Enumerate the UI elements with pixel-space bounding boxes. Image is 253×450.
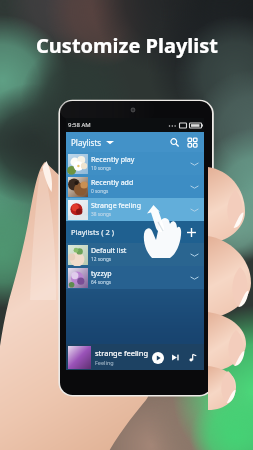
staticText: 38 songs [91, 211, 112, 218]
button[interactable]: Add playlist [185, 226, 198, 239]
button[interactable]: Next track [168, 350, 183, 365]
button[interactable]: strange feeling [66, 344, 204, 370]
staticText: Strange feeling [91, 201, 141, 211]
staticText: 12 songs [91, 256, 112, 263]
staticText: Default list [91, 246, 127, 256]
staticText: 0 songs [91, 188, 109, 195]
button[interactable]: Recently play [66, 152, 204, 175]
button[interactable]: Playlists [71, 137, 114, 148]
staticText: Recently play [91, 155, 135, 165]
button[interactable]: Grid view [185, 135, 200, 150]
button[interactable]: Strange feeling [66, 198, 204, 221]
staticText: 64 songs [91, 279, 112, 286]
staticText: Recently add [91, 178, 134, 188]
staticText: 10 songs [91, 165, 112, 172]
staticText: tyzzyp [91, 269, 112, 279]
staticText: Customize Playlist [36, 32, 218, 59]
button[interactable]: Playlist [185, 350, 200, 365]
button[interactable]: Search [167, 135, 182, 150]
button[interactable]: Play [149, 349, 166, 366]
button[interactable]: Default list [66, 243, 204, 266]
staticText: Feeling [95, 359, 114, 366]
staticText: Playlists [71, 137, 102, 148]
staticText: strange feeling [95, 348, 149, 358]
button[interactable]: tyzzyp [66, 266, 204, 289]
button[interactable]: Recently add [66, 175, 204, 198]
staticText: 9:58 AM [68, 121, 91, 129]
staticText: Playlists ( 2 ) [71, 227, 114, 237]
